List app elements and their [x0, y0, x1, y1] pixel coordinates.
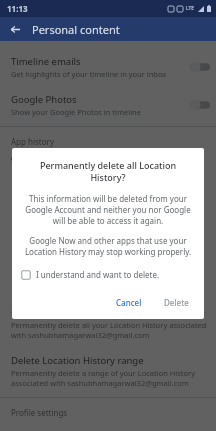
button[interactable]: Toggle off [190, 61, 210, 73]
staticText: LTE [186, 5, 195, 12]
button[interactable]: Google Photos [0, 86, 216, 124]
staticText: Google Now and other apps that use your … [21, 235, 195, 257]
staticText: Cancel [116, 297, 142, 308]
button[interactable]: Delete all Location History [0, 299, 216, 347]
button[interactable]: I understand and want to delete. [12, 268, 204, 281]
staticText: Profile settings [11, 407, 68, 418]
staticText: App history [11, 136, 54, 147]
staticText: Personal content [32, 22, 120, 37]
staticText: This information will be deleted from yo… [21, 193, 195, 226]
staticText: Get highlights of your timeline in your … [11, 69, 167, 79]
button[interactable]: Cancel [109, 293, 149, 312]
staticText: Permanently delete all your Location His… [11, 320, 210, 340]
staticText: Delete all Location History [11, 306, 128, 319]
staticText: Web & App Activity is on [11, 155, 113, 167]
staticText: I understand and want to delete. [36, 269, 160, 280]
staticText: Show your Google Photos in timeline [11, 107, 141, 117]
staticText: Delete Location History range [11, 354, 144, 367]
button[interactable]: Back [6, 20, 24, 38]
staticText: Permanently delete a range of your Locat… [11, 368, 210, 388]
button[interactable]: Timeline emails [0, 48, 216, 86]
button[interactable]: Delete [157, 293, 196, 312]
staticText: 11:13 [7, 3, 28, 14]
staticText: Delete [164, 297, 189, 308]
button[interactable]: Delete Location History range [0, 347, 216, 395]
button[interactable]: Toggle off [190, 99, 210, 111]
staticText: Permanently delete all Location History? [24, 159, 192, 183]
staticText: Google Photos [11, 93, 77, 106]
staticText: Timeline emails [11, 55, 81, 68]
